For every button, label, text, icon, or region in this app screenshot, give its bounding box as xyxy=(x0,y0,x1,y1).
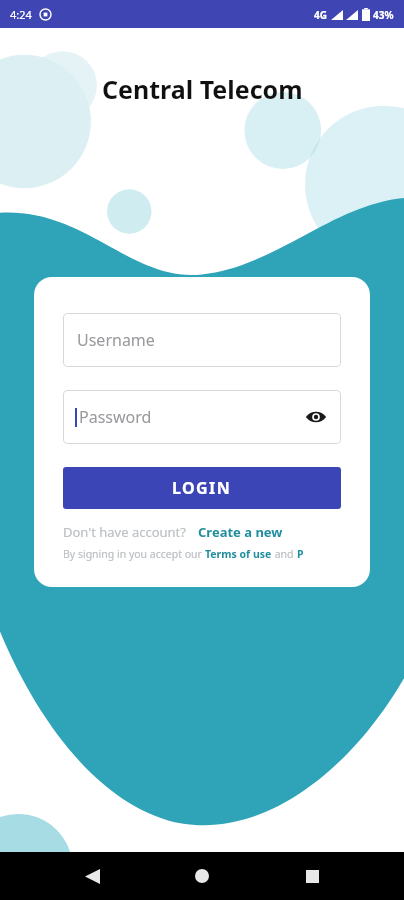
button[interactable]: Show password xyxy=(303,404,329,430)
staticText: 4G xyxy=(314,8,327,22)
button[interactable]: Recent apps xyxy=(294,858,330,894)
button[interactable]: Terms of use xyxy=(205,547,272,561)
staticText: By signing in you accept our xyxy=(63,547,205,561)
staticText: LOGIN xyxy=(172,477,232,499)
staticText: Password xyxy=(79,406,152,428)
staticText: Create a new xyxy=(198,523,283,541)
staticText: P xyxy=(297,547,304,561)
button[interactable]: Create a new xyxy=(198,523,283,541)
button[interactable]: Home xyxy=(184,858,220,894)
staticText: 43% xyxy=(373,8,394,22)
staticText: Username xyxy=(77,329,155,351)
button[interactable]: Username xyxy=(63,313,341,367)
staticText: 4:24 xyxy=(10,7,32,22)
button[interactable]: P xyxy=(297,547,304,561)
staticText: Terms of use xyxy=(205,547,272,561)
button[interactable]: LOGIN xyxy=(63,467,341,509)
button[interactable]: Back xyxy=(74,858,110,894)
staticText: Don't have account? xyxy=(63,523,186,541)
staticText: and xyxy=(272,547,297,561)
staticText: Central Telecom xyxy=(102,72,303,106)
button[interactable]: Password xyxy=(63,390,341,444)
